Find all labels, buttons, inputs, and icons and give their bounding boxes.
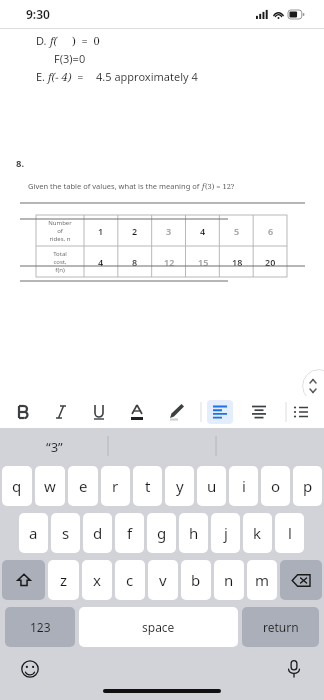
button[interactable]: Underline (87, 400, 111, 424)
staticText: space (142, 619, 175, 635)
button[interactable]: Bold (10, 400, 34, 424)
staticText: 8 (132, 256, 138, 268)
button[interactable]: s (51, 513, 80, 553)
staticText: k (253, 523, 262, 543)
staticText: g (157, 523, 167, 543)
staticText: i (242, 476, 246, 496)
staticText: 8. (16, 157, 25, 170)
button[interactable]: Scroll (302, 369, 324, 403)
button[interactable]: d (83, 513, 112, 553)
button[interactable]: space (79, 607, 238, 647)
button[interactable]: f (115, 513, 144, 553)
button[interactable]: i (229, 466, 258, 506)
staticText: s (62, 523, 70, 543)
staticText: h (189, 523, 199, 543)
button[interactable]: b (181, 560, 211, 600)
staticText: 5 (234, 225, 240, 237)
staticText: 1 (98, 225, 104, 237)
staticText: 3 (166, 225, 172, 237)
staticText: 6 (268, 225, 274, 237)
staticText: w (44, 476, 56, 496)
staticText: 4.5 approximately 4 (96, 69, 198, 84)
button[interactable]: a (19, 513, 48, 553)
button[interactable]: u (197, 466, 226, 506)
button[interactable]: Italic (49, 400, 73, 424)
button[interactable]: 123 (5, 607, 75, 647)
button[interactable]: z (48, 560, 79, 600)
staticText: 2 (132, 225, 138, 237)
staticText: 20 (265, 256, 276, 268)
button[interactable]: w (35, 466, 65, 506)
staticText: f (202, 181, 205, 191)
button[interactable]: e (68, 466, 98, 506)
button[interactable]: r (101, 466, 130, 506)
button[interactable]: g (147, 513, 176, 553)
button[interactable]: t (133, 466, 162, 506)
staticText: Given the table of values, what is the m… (28, 181, 202, 191)
staticText: d (93, 523, 103, 543)
button[interactable]: Bulleted list (291, 400, 315, 424)
staticText: b (191, 570, 201, 590)
staticText: y (176, 476, 184, 496)
staticText: Total cost, f(n) (53, 250, 67, 274)
staticText: u (207, 476, 217, 496)
button[interactable]: x (82, 560, 112, 600)
staticText: a (29, 523, 38, 543)
staticText: f (127, 523, 133, 543)
button[interactable]: j (211, 513, 240, 553)
staticText: 4 (98, 256, 104, 268)
staticText: j (224, 523, 228, 543)
staticText: 18 (232, 256, 243, 268)
button[interactable]: Emoji (18, 657, 42, 681)
staticText: F(3)=0 (54, 51, 86, 66)
staticText: 9:30 (26, 6, 50, 22)
staticText: m (255, 570, 270, 590)
button[interactable]: n (214, 560, 244, 600)
staticText: 4 (200, 225, 206, 237)
staticText: v (159, 570, 167, 590)
staticText: p (303, 476, 313, 496)
staticText: 123 (30, 619, 51, 635)
staticText: o (271, 476, 281, 496)
button[interactable]: “3” (0, 428, 108, 466)
button[interactable]: Align left (207, 400, 233, 424)
staticText: n (224, 570, 234, 590)
staticText: 12 (164, 256, 175, 268)
staticText: ) = 0 (72, 33, 100, 48)
staticText: e (79, 476, 88, 496)
staticText: c (126, 570, 134, 590)
button[interactable]: Highlight (165, 400, 189, 424)
staticText: z (60, 570, 68, 590)
button[interactable]: Backspace (280, 560, 322, 600)
staticText: “3” (46, 438, 63, 456)
button[interactable]: v (148, 560, 178, 600)
button[interactable]: return (242, 607, 319, 647)
staticText: f( (50, 33, 58, 48)
staticText: Number of rides, n (48, 219, 72, 243)
button[interactable]: Align center (246, 400, 272, 424)
button[interactable]: l (275, 513, 304, 553)
staticText: q (12, 476, 22, 496)
staticText: l (288, 523, 292, 543)
button[interactable]: Text color (125, 400, 149, 424)
button[interactable]: Shift (2, 560, 45, 600)
staticText: return (263, 619, 299, 635)
button[interactable]: o (261, 466, 290, 506)
button[interactable]: q (2, 466, 32, 506)
button[interactable]: m (247, 560, 277, 600)
staticText: f(− 4) = (48, 69, 84, 84)
staticText: x (93, 570, 101, 590)
staticText: E. (36, 69, 48, 84)
staticText: r (112, 476, 119, 496)
button[interactable]: Dictate (282, 657, 306, 681)
button[interactable]: y (165, 466, 194, 506)
staticText: D. (36, 33, 50, 48)
staticText: (3) = 12? (205, 181, 235, 191)
button[interactable]: c (115, 560, 145, 600)
button[interactable]: h (179, 513, 208, 553)
button[interactable]: k (243, 513, 272, 553)
staticText: 15 (198, 256, 209, 268)
button[interactable]: p (293, 466, 322, 506)
